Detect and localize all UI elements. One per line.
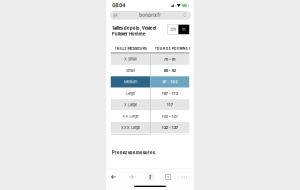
staticText: 132 - 137 <box>162 125 178 130</box>
button[interactable]: in <box>178 25 189 34</box>
staticText: aA <box>113 13 117 17</box>
button[interactable]: Share <box>146 172 155 182</box>
staticText: Large <box>126 91 135 96</box>
button[interactable]: More <box>180 172 189 182</box>
staticText: 08:04 <box>112 3 125 8</box>
staticText: Small <box>126 68 135 73</box>
staticText: Medium <box>124 80 137 84</box>
staticText: 122 - 127 <box>162 114 178 118</box>
staticText: Pullover Homme <box>112 32 145 37</box>
button[interactable]: cm <box>168 25 178 34</box>
button[interactable]: Tabs <box>163 172 173 182</box>
staticText: 97 - 102 <box>162 80 177 84</box>
staticText: 107 - 112 <box>162 91 178 96</box>
button[interactable]: Reload <box>181 11 189 19</box>
button[interactable]: Page settings <box>111 11 119 19</box>
staticText: XXX Large <box>121 125 140 130</box>
button[interactable]: Forward <box>125 170 138 183</box>
staticText: cm <box>170 27 175 32</box>
staticText: TAILLE MESSIEURS <box>114 46 146 51</box>
staticText: X Small <box>124 57 137 61</box>
staticText: XX Large <box>122 114 138 118</box>
staticText: 117 <box>167 102 173 107</box>
staticText: TOUR DE POITRINE (cm <box>155 46 195 51</box>
staticText: ↻ <box>183 12 188 18</box>
staticText: Tailles de polo, Veste et <box>112 26 157 31</box>
staticText: in <box>182 27 185 32</box>
staticText: 76 - 81 <box>164 57 176 61</box>
staticText: bonprix.fr <box>139 13 161 18</box>
staticText: X Large <box>124 102 137 107</box>
staticText: 86 - 92 <box>164 68 176 73</box>
button[interactable]: Back <box>107 170 120 183</box>
staticText: Prenez vos mesures <box>112 150 155 155</box>
